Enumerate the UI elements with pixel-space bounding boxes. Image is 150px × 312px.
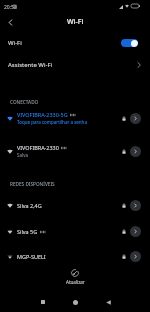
staticText: 20:58 xyxy=(4,4,17,11)
button[interactable]: Back xyxy=(96,291,120,312)
staticText: MGP-SUELI xyxy=(17,253,46,260)
staticText: VIVOFIBRA-2330-5G xyxy=(17,111,68,118)
button[interactable]: Silva 5G xyxy=(0,219,150,243)
staticText: Wi-Fi xyxy=(8,39,22,47)
button[interactable]: Recents xyxy=(31,291,55,312)
staticText: Assistente Wi-Fi xyxy=(8,61,53,69)
button[interactable]: Network details xyxy=(130,226,141,237)
button[interactable]: Network details xyxy=(130,200,141,211)
button[interactable]: VIVOFIBRA-2330-5G xyxy=(0,105,150,131)
staticText: Toque para compartilhar a senha xyxy=(17,119,87,125)
button[interactable]: Wi-Fi xyxy=(0,32,150,54)
button[interactable]: Network details xyxy=(130,113,141,124)
button[interactable]: Assistente Wi-Fi xyxy=(0,54,150,76)
button[interactable]: MGP-SUELI xyxy=(0,244,150,268)
button[interactable]: Atualizar xyxy=(0,269,150,285)
staticText: VIVOFIBRA-2330 xyxy=(17,144,59,151)
button[interactable]: Silva 2,4G xyxy=(0,193,150,217)
staticText: Atualizar xyxy=(66,279,85,285)
button[interactable]: Home xyxy=(63,291,87,312)
button[interactable]: Back xyxy=(0,12,20,32)
staticText: Silva 2,4G xyxy=(17,202,42,209)
staticText: CONECTADO xyxy=(10,99,150,105)
staticText: Silva 5G xyxy=(17,228,38,235)
staticText: Salva xyxy=(17,152,28,158)
button[interactable]: Network details xyxy=(130,146,141,157)
button[interactable]: Network details xyxy=(130,251,141,262)
button[interactable]: VIVOFIBRA-2330 xyxy=(0,138,150,164)
staticText: Wi-Fi xyxy=(67,17,84,27)
staticText: REDES DISPONÍVEIS xyxy=(10,181,150,187)
